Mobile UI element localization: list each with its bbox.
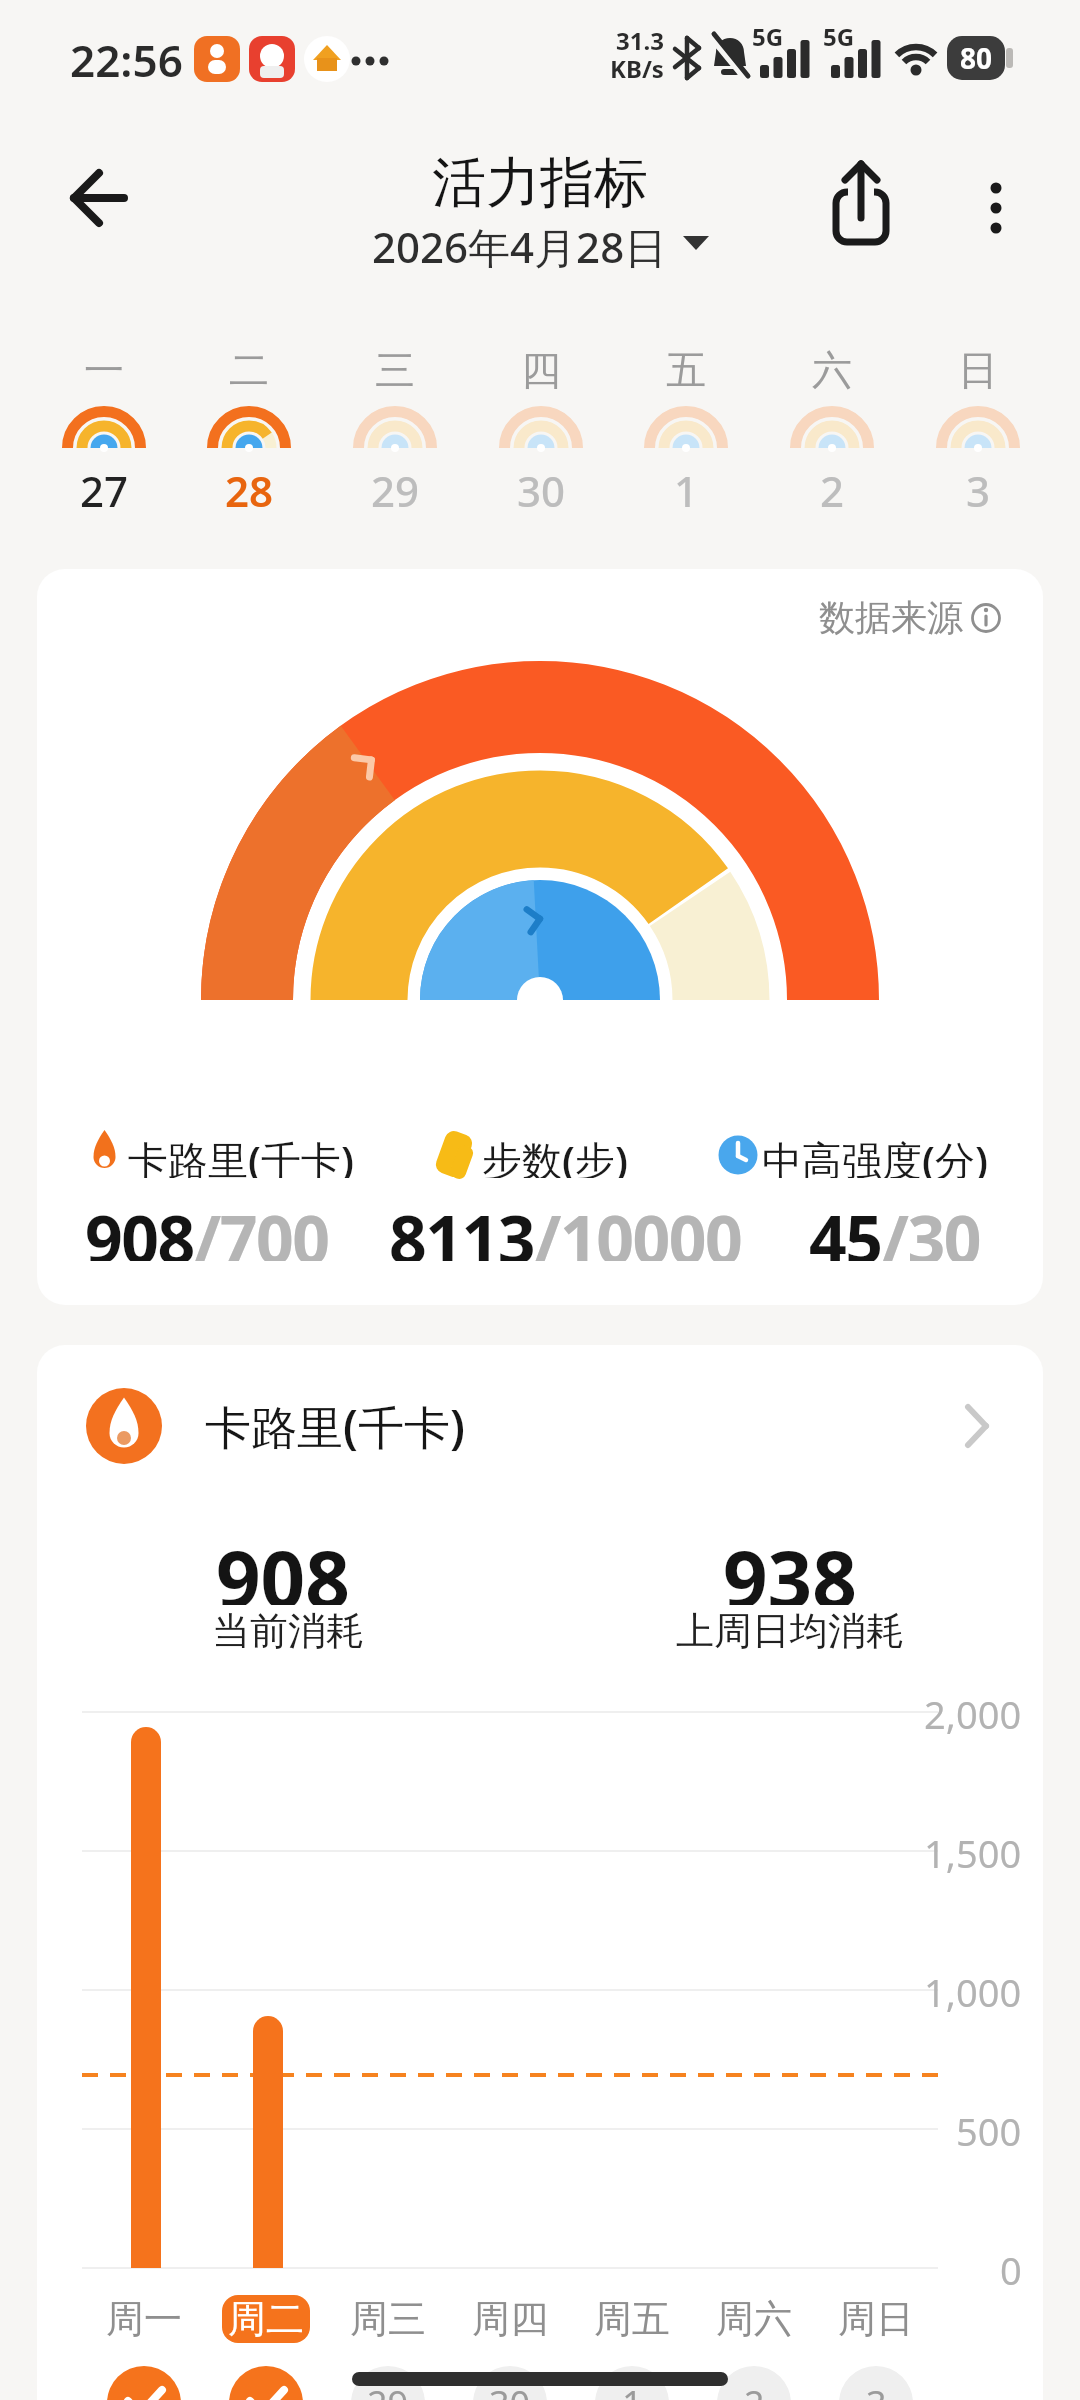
button[interactable] bbox=[812, 158, 908, 254]
button[interactable]: 周三 bbox=[328, 2293, 448, 2345]
staticText: 周二 bbox=[228, 2295, 304, 2343]
staticText: 30 bbox=[489, 2379, 531, 2400]
staticText: 1,000 bbox=[924, 1966, 1022, 2014]
button[interactable]: 2 bbox=[704, 2375, 804, 2400]
staticText: 3 bbox=[966, 462, 991, 514]
button[interactable]: 二 bbox=[179, 310, 319, 525]
button[interactable]: 五 bbox=[616, 310, 756, 525]
staticText: 三 bbox=[375, 345, 415, 395]
staticText: 80 bbox=[960, 39, 993, 77]
staticText: 2,000 bbox=[924, 1688, 1022, 1736]
staticText: 30 bbox=[517, 462, 566, 514]
staticText: 周五 bbox=[594, 2295, 670, 2343]
staticText: 28 bbox=[225, 462, 274, 514]
staticText: 2 bbox=[820, 462, 845, 514]
button[interactable]: 日 bbox=[908, 310, 1048, 525]
staticText: 五 bbox=[666, 345, 706, 395]
button[interactable]: 2026年4月28日 bbox=[290, 218, 790, 270]
staticText: 29 bbox=[371, 462, 420, 514]
staticText: 2026年4月28日 bbox=[372, 218, 667, 270]
button[interactable]: 六 bbox=[762, 310, 902, 525]
button[interactable]: 周日 bbox=[816, 2293, 936, 2345]
staticText: 29 bbox=[367, 2379, 409, 2400]
staticText: 周六 bbox=[716, 2295, 792, 2343]
staticText: 500 bbox=[956, 2105, 1022, 2153]
staticText: 上周日均消耗 bbox=[676, 1607, 904, 1655]
staticText: 卡路里(千卡) bbox=[128, 1132, 354, 1178]
staticText: 数据来源 bbox=[819, 595, 963, 640]
staticText: 3 bbox=[866, 2379, 887, 2400]
staticText: 1,500 bbox=[924, 1827, 1022, 1875]
button[interactable]: 1 bbox=[582, 2375, 682, 2400]
staticText: 0 bbox=[1000, 2244, 1022, 2292]
button[interactable]: 周五 bbox=[572, 2293, 692, 2345]
button[interactable]: 卡路里(千卡) bbox=[67, 1375, 1013, 1477]
staticText: 一 bbox=[84, 345, 124, 395]
staticText: 周四 bbox=[472, 2295, 548, 2343]
staticText: 周三 bbox=[350, 2295, 426, 2343]
staticText: 当前消耗 bbox=[212, 1607, 364, 1655]
staticText: 日 bbox=[958, 345, 998, 395]
staticText: 1 bbox=[674, 462, 699, 514]
button[interactable]: 数据来源 bbox=[807, 589, 1007, 645]
staticText: 步数(步) bbox=[482, 1132, 628, 1178]
staticText: 六 bbox=[812, 345, 852, 395]
staticText: KB/s bbox=[610, 52, 664, 80]
button[interactable]: 三 bbox=[325, 310, 465, 525]
staticText: 908 bbox=[216, 1525, 350, 1605]
staticText: 四 bbox=[521, 345, 561, 395]
staticText: 938 bbox=[723, 1525, 857, 1605]
staticText: 45/30 bbox=[809, 1193, 980, 1261]
staticText: 二 bbox=[229, 345, 269, 395]
button[interactable]: 30 bbox=[460, 2375, 560, 2400]
button[interactable]: 周四 bbox=[450, 2293, 570, 2345]
button[interactable]: 四 bbox=[471, 310, 611, 525]
staticText: 31.3 bbox=[616, 24, 664, 52]
button[interactable]: 周一 bbox=[84, 2293, 204, 2345]
staticText: 卡路里(千卡) bbox=[205, 1395, 465, 1458]
button[interactable]: 周六 bbox=[694, 2293, 814, 2345]
button[interactable]: 一 bbox=[34, 310, 174, 525]
staticText: 周一 bbox=[106, 2295, 182, 2343]
staticText: 5G bbox=[823, 20, 855, 48]
staticText: 活力指标 bbox=[432, 149, 648, 217]
button[interactable]: 3 bbox=[826, 2375, 926, 2400]
staticText: 5G bbox=[752, 20, 784, 48]
staticText: 8113/10000 bbox=[389, 1193, 742, 1261]
staticText: 908/700 bbox=[85, 1193, 329, 1261]
button[interactable]: 29 bbox=[338, 2375, 438, 2400]
staticText: 22:56 bbox=[70, 30, 183, 86]
staticText: 中高强度(分) bbox=[762, 1132, 988, 1178]
staticText: 2 bbox=[744, 2379, 765, 2400]
staticText: 1 bbox=[622, 2379, 643, 2400]
button[interactable]: 周二 bbox=[206, 2293, 326, 2345]
button[interactable] bbox=[50, 150, 146, 246]
button[interactable] bbox=[958, 158, 1038, 254]
staticText: 27 bbox=[80, 462, 129, 514]
staticText: 周日 bbox=[838, 2295, 914, 2343]
